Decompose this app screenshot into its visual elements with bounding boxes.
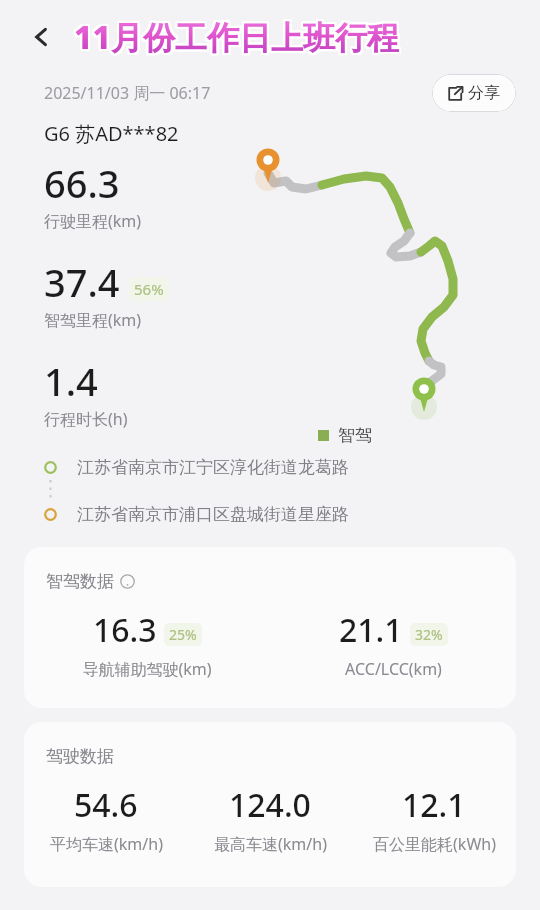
- staticText: 37.4: [44, 256, 120, 308]
- staticText: 导航辅助驾驶(km): [82, 658, 212, 680]
- staticText: 21.1: [339, 608, 403, 652]
- staticText: 百公里能耗(kWh): [373, 833, 496, 855]
- staticText: G6 苏AD***82: [44, 120, 179, 147]
- staticText: 智驾里程(km): [44, 309, 142, 331]
- staticText: 11月份工作日上班行程: [72, 15, 397, 59]
- staticText: 54.6: [74, 783, 138, 827]
- staticText: 行驶里程(km): [44, 210, 142, 232]
- staticText: 11月份工作日上班行程: [76, 15, 401, 59]
- staticText: 平均车速(km/h): [50, 833, 163, 855]
- staticText: 11月份工作日上班行程: [72, 13, 397, 57]
- staticText: 江苏省南京市江宁区淳化街道龙葛路: [77, 457, 349, 478]
- staticText: 25%: [169, 625, 197, 644]
- staticText: 驾驶数据: [46, 746, 114, 767]
- staticText: 11月份工作日上班行程: [76, 13, 401, 57]
- staticText: 2025/11/03 周一 06:17: [44, 82, 211, 104]
- staticText: 11月份工作日上班行程: [74, 17, 399, 61]
- staticText: 行程时长(h): [44, 408, 128, 430]
- staticText: 16.3: [93, 608, 157, 652]
- staticText: 智驾: [338, 425, 372, 446]
- staticText: 1.4: [44, 355, 98, 407]
- staticText: 12.1: [402, 783, 466, 827]
- button[interactable]: 分享: [432, 74, 516, 112]
- staticText: ACC/LCC(km): [345, 658, 442, 680]
- button[interactable]: 驾驶数据: [24, 722, 516, 887]
- staticText: 智驾数据: [46, 571, 114, 592]
- staticText: 江苏省南京市浦口区盘城街道星座路: [77, 504, 349, 525]
- button[interactable]: Back: [18, 14, 64, 60]
- staticText: 分享: [468, 83, 500, 103]
- button[interactable]: 智驾数据: [24, 547, 516, 708]
- staticText: 124.0: [229, 783, 311, 827]
- staticText: 11月份工作日上班行程: [74, 15, 399, 59]
- staticText: 66.3: [44, 157, 120, 209]
- staticText: 最高车速(km/h): [214, 833, 327, 855]
- staticText: 32%: [415, 625, 443, 644]
- staticText: 11月份工作日上班行程: [76, 17, 401, 61]
- staticText: 11月份工作日上班行程: [72, 17, 397, 61]
- staticText: 11月份工作日上班行程: [74, 13, 399, 57]
- staticText: 56%: [134, 279, 164, 299]
